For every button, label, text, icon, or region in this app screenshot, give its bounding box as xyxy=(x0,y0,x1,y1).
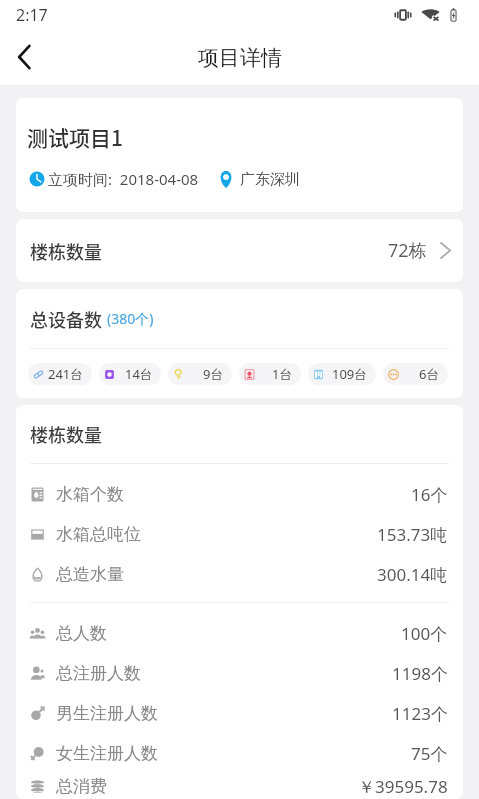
staticText: 109台 xyxy=(332,365,368,383)
staticText: 16个 xyxy=(411,483,448,506)
staticText: 项目详情 xyxy=(198,45,282,71)
staticText: 楼栋数量 xyxy=(30,421,102,447)
staticText: 楼栋数量 xyxy=(30,238,102,264)
staticText: 立项时间: 2018-04-08 xyxy=(48,169,199,189)
staticText: 1台 xyxy=(272,365,293,383)
staticText: 1198个 xyxy=(392,662,448,685)
staticText: 9台 xyxy=(203,365,224,383)
button[interactable]: Back xyxy=(0,33,48,81)
staticText: 广东深圳 xyxy=(240,170,300,189)
staticText: ￥39595.78 xyxy=(358,775,448,798)
button[interactable]: 楼栋数量 xyxy=(16,219,463,282)
staticText: 测试项目1 xyxy=(27,122,123,152)
staticText: 2:17 xyxy=(16,4,48,26)
staticText: 75个 xyxy=(411,742,448,765)
staticText: 水箱个数 xyxy=(56,484,124,505)
staticText: 241台 xyxy=(48,365,84,383)
staticText: (380个) xyxy=(107,309,154,328)
staticText: 6台 xyxy=(419,365,440,383)
staticText: 总设备数 xyxy=(30,306,102,332)
staticText: 72栋 xyxy=(388,238,427,263)
staticText: 总消费 xyxy=(56,776,107,797)
staticText: 女生注册人数 xyxy=(56,743,158,764)
staticText: 水箱总吨位 xyxy=(56,524,141,545)
staticText: 总造水量 xyxy=(56,564,124,585)
staticText: 总注册人数 xyxy=(56,663,141,684)
staticText: 总人数 xyxy=(56,623,107,644)
staticText: 男生注册人数 xyxy=(56,703,158,724)
staticText: 300.14吨 xyxy=(377,563,448,586)
staticText: 1123个 xyxy=(392,702,448,725)
staticText: 100个 xyxy=(401,622,448,645)
staticText: 153.73吨 xyxy=(377,523,448,546)
staticText: 14台 xyxy=(125,365,153,383)
